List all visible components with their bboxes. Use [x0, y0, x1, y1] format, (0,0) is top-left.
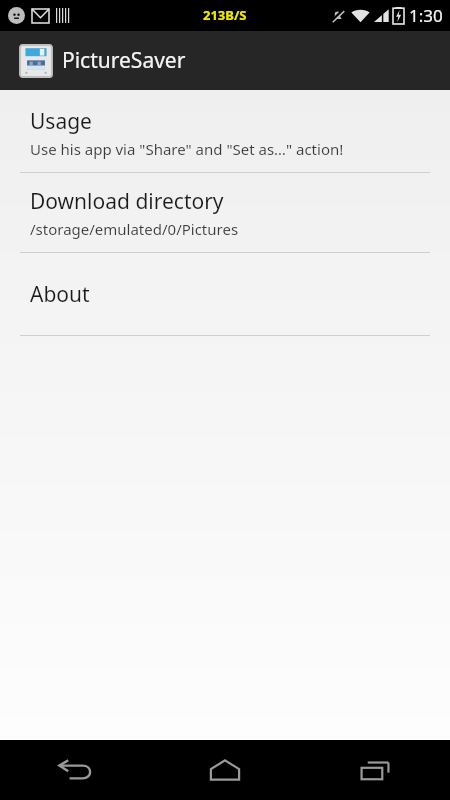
staticText: PictureSaver: [62, 46, 186, 75]
button[interactable]: Recent apps: [300, 740, 450, 800]
button[interactable]: Usage: [0, 94, 450, 172]
staticText: Use his app via "Share" and "Set as…" ac…: [30, 139, 344, 159]
staticText: 1:30: [409, 4, 443, 27]
button[interactable]: Home: [150, 740, 300, 800]
button[interactable]: Download directory: [0, 173, 450, 252]
staticText: About: [30, 280, 90, 309]
staticText: Download directory: [30, 187, 224, 216]
staticText: 213B/S: [203, 6, 247, 24]
staticText: /storage/emulated/0/Pictures: [30, 219, 239, 239]
staticText: Usage: [30, 107, 92, 136]
button[interactable]: About: [0, 253, 450, 335]
button[interactable]: Back: [0, 740, 150, 800]
